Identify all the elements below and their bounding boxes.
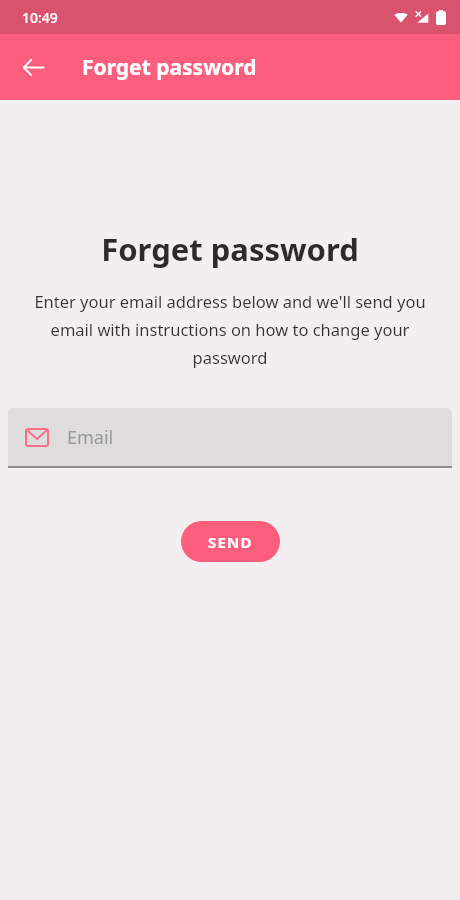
button[interactable]: Back <box>12 46 54 88</box>
staticText: Forget password <box>0 228 460 270</box>
staticText: Enter your email address below and we'll… <box>22 290 438 369</box>
staticText: SEND <box>208 532 253 552</box>
staticText: Forget password <box>82 53 257 82</box>
button[interactable]: Email <box>8 408 452 468</box>
staticText: 10:49 <box>22 8 58 27</box>
staticText: Email <box>67 425 114 450</box>
button[interactable]: SEND <box>181 521 280 562</box>
